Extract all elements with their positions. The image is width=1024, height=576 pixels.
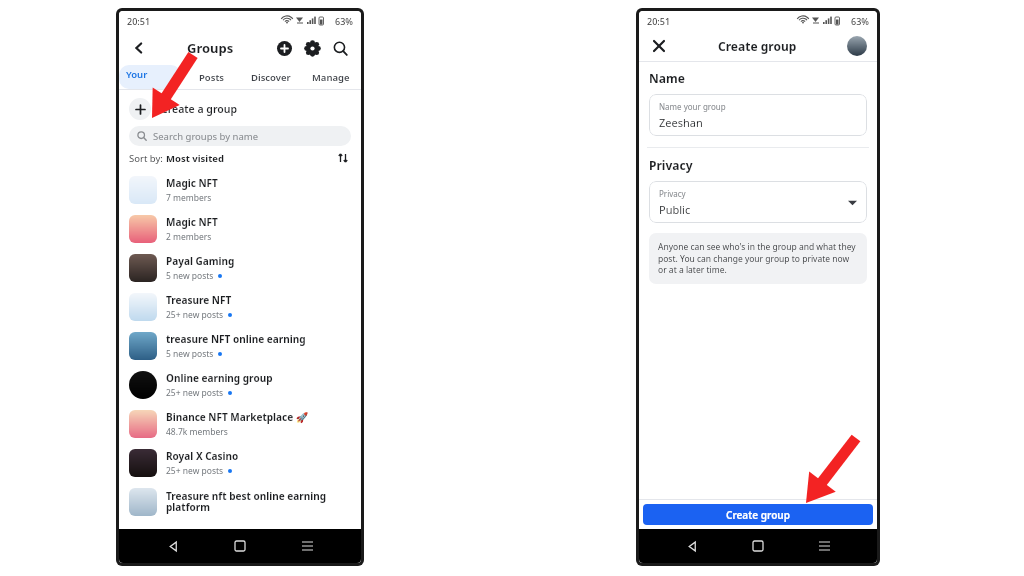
staticText: Anyone can see who's in the group and wh… [658,241,858,276]
button[interactable]: Recents [294,533,320,559]
staticText: 63% [335,15,353,27]
staticText: Discover [251,71,291,84]
button[interactable]: Privacy [649,181,867,223]
staticText: 20:51 [127,15,151,27]
staticText: Search groups by name [153,130,259,143]
button[interactable]: Profile [847,36,867,56]
staticText: Binance NFT Marketplace 🚀 [166,410,309,424]
button[interactable]: Manage [301,65,361,89]
staticText: Name your group [659,101,726,112]
button[interactable]: Sort [335,150,351,166]
staticText: treasure NFT online earning [166,332,306,346]
button[interactable]: Recents [811,533,837,559]
staticText: 48.7k members [166,426,228,438]
staticText: Magic NFT [166,215,218,229]
staticText: Manage [312,71,350,84]
staticText: 7 members [166,192,212,204]
button[interactable]: Create [273,37,295,59]
staticText: Payal Gaming [166,254,235,268]
staticText: Your groups [126,68,174,86]
staticText: Posts [199,71,224,84]
button[interactable]: Royal X Casino [119,443,361,482]
staticText: Zeeshan [659,115,703,130]
staticText: Most visited [166,152,224,165]
button[interactable]: Posts [181,65,241,89]
button[interactable]: Treasure NFT [119,287,361,326]
staticText: 20:51 [647,15,671,27]
staticText: Online earning group [166,371,273,385]
staticText: Create group [718,38,797,54]
staticText: Treasure nft best online earning platfor… [166,489,351,514]
button[interactable]: Close [649,36,669,56]
staticText: 5 new posts [166,270,214,282]
staticText: Treasure NFT [166,293,232,307]
button[interactable]: Create a group [119,92,361,126]
button[interactable]: Home [227,533,253,559]
staticText: Privacy [659,188,686,199]
button[interactable]: Name your group [649,94,867,136]
button[interactable]: Binance NFT Marketplace 🚀 [119,404,361,443]
staticText: 5 new posts [166,348,214,360]
staticText: Groups [187,39,234,57]
staticText: 25+ new posts [166,387,224,399]
button[interactable]: Payal Gaming [119,248,361,287]
staticText: 25+ new posts [166,309,224,321]
staticText: 25+ new posts [166,465,224,477]
button[interactable]: Treasure nft best online earning platfor… [119,482,361,521]
staticText: Public [659,202,691,217]
button[interactable]: Back [160,533,186,559]
button[interactable]: Settings [301,37,323,59]
button[interactable]: treasure NFT online earning [119,326,361,365]
staticText: Create a group [161,102,238,116]
button[interactable]: Create group [643,504,873,525]
staticText: Name [649,70,685,86]
staticText: Royal X Casino [166,449,239,463]
button[interactable]: Back [679,533,705,559]
staticText: 63% [851,15,869,27]
staticText: Create group [726,508,790,522]
button[interactable]: Search groups by name [129,126,351,146]
button[interactable]: Home [745,533,771,559]
button[interactable]: Back [129,38,149,58]
button[interactable]: Online earning group [119,365,361,404]
button[interactable]: Magic NFT [119,170,361,209]
button[interactable]: Search [329,37,351,59]
staticText: Sort by: [129,152,166,165]
button[interactable]: Magic NFT [119,209,361,248]
button[interactable]: Your groups [119,65,181,89]
staticText: Privacy [649,157,693,173]
staticText: Magic NFT [166,176,218,190]
button[interactable]: Discover [241,65,301,89]
staticText: 2 members [166,231,212,243]
